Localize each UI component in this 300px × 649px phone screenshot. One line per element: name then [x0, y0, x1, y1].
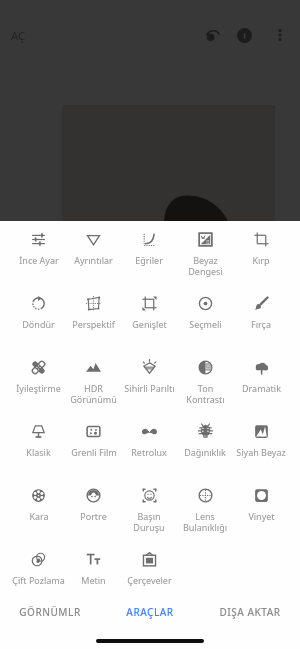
staticText: Kırp: [252, 254, 270, 266]
staticText: AÇ: [11, 28, 25, 43]
button[interactable]: GÖRNÜMLR: [0, 593, 100, 631]
staticText: İyileştirme: [16, 382, 61, 394]
staticText: Portre: [80, 510, 107, 522]
staticText: Grenli Film: [71, 446, 117, 458]
staticText: Sihirli Parıltı: [124, 382, 175, 394]
button[interactable]: İyileştirme: [11, 353, 66, 417]
button[interactable]: Undo: [196, 19, 228, 51]
button[interactable]: İnce Ayar: [11, 225, 66, 289]
button[interactable]: Beyaz Dengesi: [177, 225, 233, 289]
button[interactable]: ARAÇLAR: [100, 593, 200, 631]
button[interactable]: Ayrıntılar: [66, 225, 121, 289]
staticText: Ayrıntılar: [74, 254, 113, 266]
button[interactable]: Klasik: [11, 417, 66, 481]
button[interactable]: Seçmeli: [177, 289, 233, 353]
staticText: Genişlet: [132, 318, 167, 330]
staticText: Siyah Beyaz: [236, 446, 286, 458]
button[interactable]: Siyah Beyaz: [233, 417, 289, 481]
button[interactable]: HDR Görünümü: [66, 353, 121, 417]
button[interactable]: Başın Duruşu: [121, 481, 177, 545]
button[interactable]: Perspektif: [66, 289, 121, 353]
button[interactable]: Info: [228, 19, 260, 51]
button[interactable]: Kırp: [233, 225, 289, 289]
staticText: Ton Kontrastı: [186, 382, 225, 405]
staticText: Metin: [81, 574, 106, 586]
staticText: Vinyet: [248, 510, 275, 522]
button[interactable]: Döndür: [11, 289, 66, 353]
button[interactable]: Lens Bulanıklığı: [177, 481, 233, 545]
button[interactable]: Grenli Film: [66, 417, 121, 481]
button[interactable]: Metin: [66, 545, 121, 609]
staticText: ARAÇLAR: [126, 605, 174, 619]
staticText: Döndür: [22, 318, 55, 330]
button[interactable]: Sihirli Parıltı: [121, 353, 177, 417]
button[interactable]: Dağınıklık: [177, 417, 233, 481]
button[interactable]: Portre: [66, 481, 121, 545]
button[interactable]: Ton Kontrastı: [177, 353, 233, 417]
staticText: Perspektif: [72, 318, 115, 330]
staticText: Beyaz Dengesi: [188, 254, 223, 277]
staticText: Kara: [29, 510, 49, 522]
staticText: İnce Ayar: [19, 254, 59, 266]
button[interactable]: Eğriler: [121, 225, 177, 289]
staticText: Fırça: [251, 318, 271, 330]
staticText: Lens Bulanıklığı: [183, 510, 227, 533]
button[interactable]: Retrolux: [121, 417, 177, 481]
button[interactable]: Dramatik: [233, 353, 289, 417]
button[interactable]: Fırça: [233, 289, 289, 353]
button[interactable]: Vinyet: [233, 481, 289, 545]
staticText: Retrolux: [131, 446, 167, 458]
staticText: Klasik: [26, 446, 51, 458]
staticText: DIŞA AKTAR: [219, 605, 281, 619]
staticText: Seçmeli: [189, 318, 222, 330]
staticText: GÖRNÜMLR: [19, 605, 81, 619]
button[interactable]: Genişlet: [121, 289, 177, 353]
staticText: Başın Duruşu: [133, 510, 165, 533]
button[interactable]: DIŞA AKTAR: [200, 593, 300, 631]
button[interactable]: Çerçeveler: [121, 545, 177, 609]
button[interactable]: More options: [267, 22, 293, 48]
staticText: Eğriler: [135, 254, 163, 266]
staticText: Dramatik: [242, 382, 281, 394]
staticText: Çerçeveler: [127, 574, 172, 586]
button[interactable]: Çift Pozlama: [11, 545, 66, 609]
staticText: Çift Pozlama: [12, 574, 65, 586]
button[interactable]: AÇ: [5, 22, 31, 49]
button[interactable]: Kara: [11, 481, 66, 545]
staticText: HDR Görünümü: [70, 382, 117, 405]
staticText: Dağınıklık: [184, 446, 226, 458]
